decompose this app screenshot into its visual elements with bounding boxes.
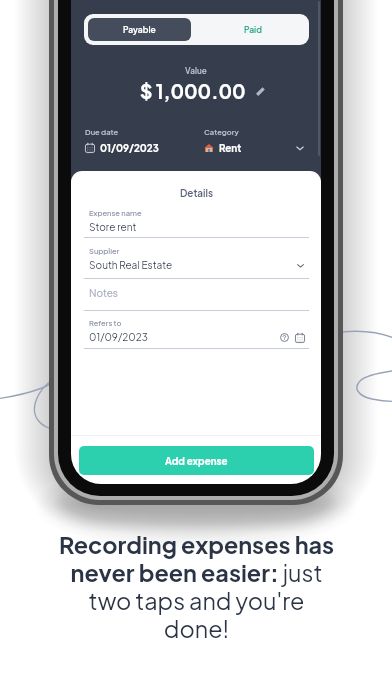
button[interactable]: Edit value [254, 85, 267, 98]
staticText: 01/09/2023 [89, 331, 148, 344]
staticText: Category [204, 127, 239, 137]
staticText: Payable [123, 24, 156, 35]
staticText: Paid [244, 24, 262, 35]
button[interactable]: Refers to [84, 318, 309, 350]
staticText: Value [185, 65, 207, 75]
button[interactable]: Notes [84, 284, 309, 312]
button[interactable]: Paid [191, 18, 305, 41]
staticText: Recording expenses has never been easier… [54, 530, 339, 643]
staticText: Refers to [89, 318, 122, 328]
button[interactable]: Supplier [84, 246, 309, 280]
staticText: South Real Estate [89, 259, 173, 272]
staticText: Notes [89, 287, 118, 300]
staticText: $ 1,000.00 [140, 79, 246, 103]
staticText: Add expense [165, 455, 228, 467]
other: Help [280, 333, 289, 342]
staticText: Expense name [89, 208, 142, 218]
staticText: Store rent [89, 221, 137, 234]
staticText: Details [180, 187, 213, 199]
button[interactable]: Expense name [84, 208, 309, 239]
staticText: Due date [85, 127, 119, 137]
button[interactable]: Add expense [79, 446, 314, 475]
button[interactable]: Category [204, 127, 305, 154]
staticText: 01/09/2023 [100, 142, 159, 154]
staticText: Rent [219, 142, 242, 154]
staticText: Supplier [89, 246, 120, 256]
button[interactable]: Due date [85, 127, 195, 154]
button[interactable]: Payable [88, 18, 191, 41]
